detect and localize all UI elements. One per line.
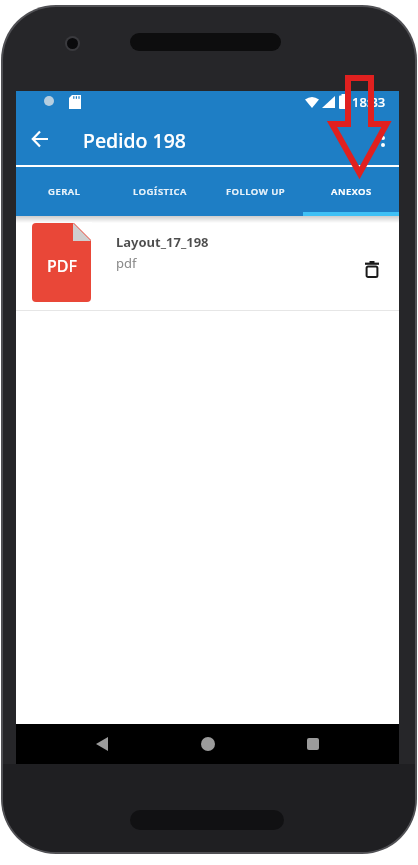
staticText: pdf: [116, 254, 137, 272]
button[interactable]: GERAL: [16, 167, 112, 216]
staticText: ANEXOS: [331, 185, 372, 198]
staticText: Layout_17_198: [116, 233, 209, 251]
button[interactable]: [188, 724, 228, 764]
button[interactable]: [293, 724, 333, 764]
staticText: Pedido 198: [83, 127, 186, 154]
staticText: PDF: [47, 255, 77, 277]
button[interactable]: FOLLOW UP: [208, 167, 304, 216]
button[interactable]: [367, 122, 399, 154]
staticText: LOGÍSTICA: [133, 185, 187, 198]
staticText: GERAL: [48, 185, 81, 198]
staticText: 18:33: [352, 93, 386, 111]
button[interactable]: [82, 724, 122, 764]
button[interactable]: [352, 249, 392, 289]
staticText: FOLLOW UP: [226, 185, 286, 198]
button[interactable]: LOGÍSTICA: [112, 167, 208, 216]
button[interactable]: [24, 123, 56, 155]
button[interactable]: PDF: [16, 216, 399, 311]
button[interactable]: ANEXOS: [304, 167, 399, 216]
